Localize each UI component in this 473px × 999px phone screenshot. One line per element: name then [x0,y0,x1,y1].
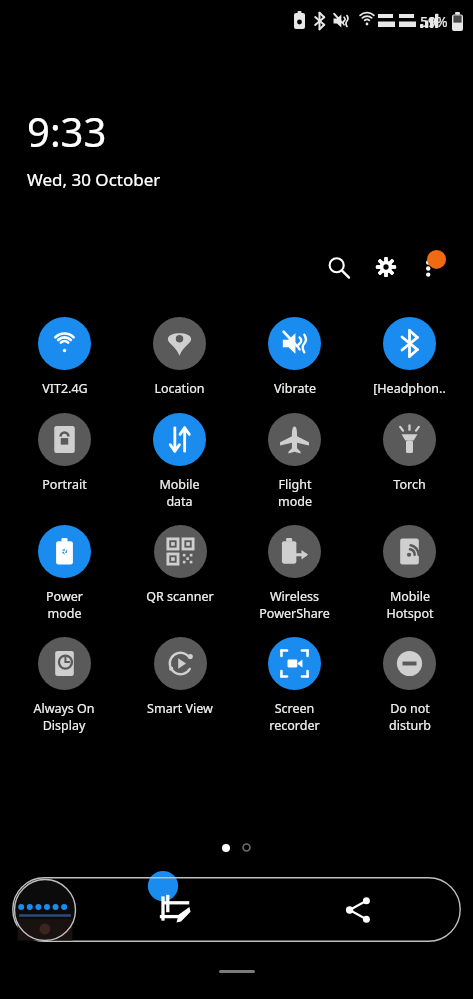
staticText: 59% [420,12,448,31]
staticText: 9:33 [27,104,107,158]
button[interactable]: Wireless PowerShare [257,525,332,621]
button[interactable]: Screenshot preview [13,878,77,942]
staticText: Always On Display [33,700,95,733]
staticText: VIT2.4G [42,380,88,397]
button[interactable]: QR scanner [144,525,216,605]
button[interactable]: Screen recorder [266,637,323,733]
staticText: Mobile Hotspot [386,588,434,621]
staticText: Power mode [46,588,83,621]
staticText: [Headphon.. [373,380,446,397]
button[interactable]: Mobile data [151,413,208,509]
button[interactable]: Always On Display [31,637,97,733]
button[interactable]: Smart View [145,637,215,717]
button[interactable]: Portrait [36,413,93,493]
button[interactable]: Location [151,317,208,397]
staticText: Portrait [42,476,87,493]
button[interactable]: [Headphon.. [371,317,448,397]
staticText: Wireless PowerShare [259,588,330,621]
button[interactable]: Vibrate [266,317,323,397]
button[interactable]: Do not disturb [381,637,438,733]
staticText: QR scanner [146,588,214,605]
staticText: Wed, 30 October [27,168,161,191]
button[interactable]: Edit screenshot [77,877,273,942]
button[interactable]: VIT2.4G [36,317,93,397]
button[interactable]: Search [319,248,357,286]
staticText: Location [154,380,205,397]
staticText: Screen recorder [269,700,320,733]
button[interactable]: Settings [367,248,405,286]
staticText: Mobile data [159,476,200,509]
button[interactable]: Mobile Hotspot [381,525,438,621]
staticText: Flight mode [278,476,312,509]
button[interactable]: Flight mode [266,413,323,509]
button[interactable]: Power mode [36,525,93,621]
staticText: Smart View [147,700,213,717]
staticText: Vibrate [274,380,316,397]
button[interactable]: More options [413,248,451,286]
staticText: Torch [393,476,426,493]
button[interactable]: Torch [381,413,438,493]
staticText: Do not disturb [389,700,431,733]
button[interactable]: Share [273,877,443,942]
